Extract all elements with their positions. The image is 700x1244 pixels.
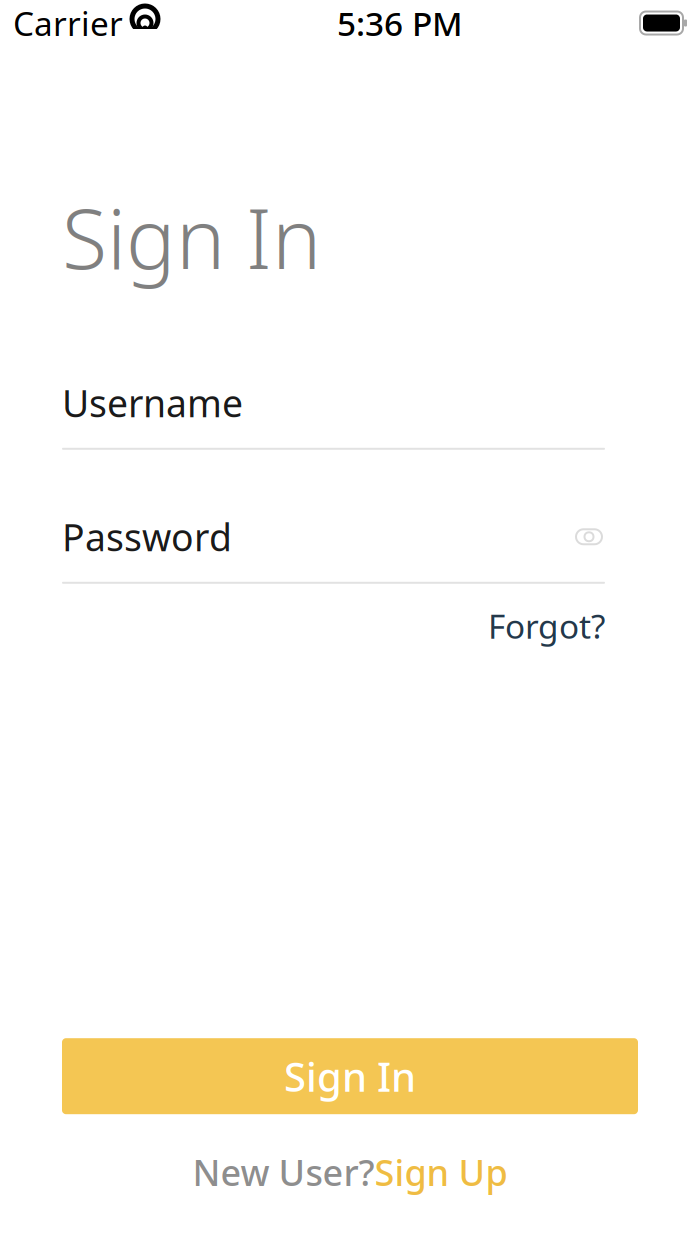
staticText: New User? bbox=[192, 1148, 374, 1196]
staticText: Username bbox=[62, 378, 243, 428]
staticText: 5:36 PM bbox=[337, 1, 463, 45]
button[interactable]: Show password bbox=[573, 524, 605, 550]
staticText: Carrier bbox=[13, 1, 123, 45]
staticText: Forgot? bbox=[488, 604, 605, 648]
staticText: Sign Up bbox=[374, 1148, 507, 1196]
staticText: Sign In bbox=[62, 182, 321, 292]
button[interactable]: Forgot? bbox=[488, 604, 605, 648]
button[interactable]: New User? bbox=[0, 1142, 700, 1202]
staticText: Sign In bbox=[284, 1050, 416, 1103]
button[interactable]: Sign In bbox=[62, 1038, 638, 1114]
staticText: Password bbox=[62, 512, 232, 562]
